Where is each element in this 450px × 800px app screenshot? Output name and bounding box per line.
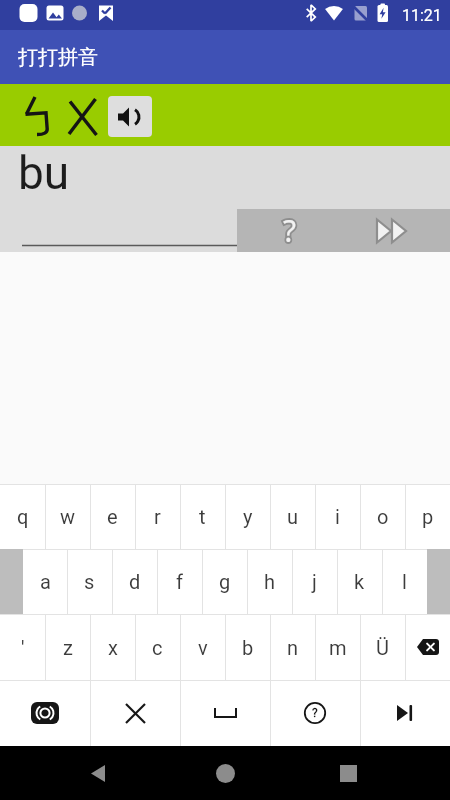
staticText: e	[107, 505, 118, 528]
button[interactable]: w	[45, 484, 90, 549]
staticText: h	[264, 570, 276, 593]
button[interactable]	[360, 680, 450, 746]
staticText: l	[402, 570, 407, 593]
button[interactable]	[90, 680, 180, 746]
staticText: d	[129, 570, 141, 593]
button[interactable]: u	[270, 484, 315, 549]
button[interactable]: h	[247, 549, 292, 614]
button[interactable]: y	[225, 484, 270, 549]
button[interactable]: o	[360, 484, 405, 549]
button[interactable]: ?	[237, 209, 343, 252]
staticText: g	[219, 570, 231, 593]
button[interactable]	[201, 749, 249, 797]
button[interactable]: b	[225, 614, 270, 680]
staticText: w	[60, 505, 76, 528]
staticText: 打打拼音	[18, 45, 98, 70]
staticText: i	[335, 505, 340, 528]
staticText: Ü	[376, 636, 389, 659]
button[interactable]: '	[0, 614, 45, 680]
button[interactable]: k	[337, 549, 382, 614]
staticText: p	[422, 505, 434, 528]
button[interactable]: x	[90, 614, 135, 680]
button[interactable]: v	[180, 614, 225, 680]
staticText: bu	[18, 146, 70, 200]
button[interactable]	[180, 680, 270, 746]
button[interactable]	[405, 614, 450, 680]
staticText: c	[152, 636, 163, 659]
button[interactable]: m	[315, 614, 360, 680]
staticText: a	[40, 570, 51, 593]
staticText: ?	[283, 210, 297, 251]
button[interactable]: r	[135, 484, 180, 549]
staticText: f	[176, 570, 183, 593]
button[interactable]: d	[112, 549, 157, 614]
button[interactable]: n	[270, 614, 315, 680]
button[interactable]: e	[90, 484, 135, 549]
button[interactable]	[74, 749, 122, 797]
staticText: x	[108, 636, 118, 659]
button[interactable]: l	[382, 549, 427, 614]
staticText: u	[287, 505, 299, 528]
staticText: v	[198, 636, 208, 659]
button[interactable]	[0, 680, 90, 746]
button[interactable]: i	[315, 484, 360, 549]
button[interactable]: f	[157, 549, 202, 614]
staticText: ?	[283, 210, 297, 251]
staticText: k	[354, 570, 365, 593]
staticText: j	[312, 570, 317, 593]
staticText: z	[63, 636, 73, 659]
button[interactable]	[108, 96, 152, 137]
button[interactable]	[343, 209, 450, 252]
staticText: n	[287, 636, 299, 659]
staticText: y	[243, 505, 253, 528]
button[interactable]: t	[180, 484, 225, 549]
staticText: m	[329, 636, 347, 659]
staticText: 11:21	[402, 6, 442, 25]
button[interactable]: j	[292, 549, 337, 614]
button[interactable]: a	[23, 549, 67, 614]
button[interactable]	[324, 749, 372, 797]
staticText: s	[84, 570, 95, 593]
button[interactable]: g	[202, 549, 247, 614]
staticText: ?	[312, 706, 318, 720]
button[interactable]: p	[405, 484, 450, 549]
staticText: q	[17, 505, 29, 528]
button[interactable]: s	[67, 549, 112, 614]
staticText: o	[377, 505, 389, 528]
button[interactable]: Ü	[360, 614, 405, 680]
staticText: r	[154, 505, 161, 528]
button[interactable]: q	[0, 484, 45, 549]
button[interactable]: z	[45, 614, 90, 680]
staticText: '	[21, 636, 25, 659]
staticText: t	[199, 505, 206, 528]
staticText: b	[242, 636, 254, 659]
button[interactable]: c	[135, 614, 180, 680]
button[interactable]: ?	[270, 680, 360, 746]
